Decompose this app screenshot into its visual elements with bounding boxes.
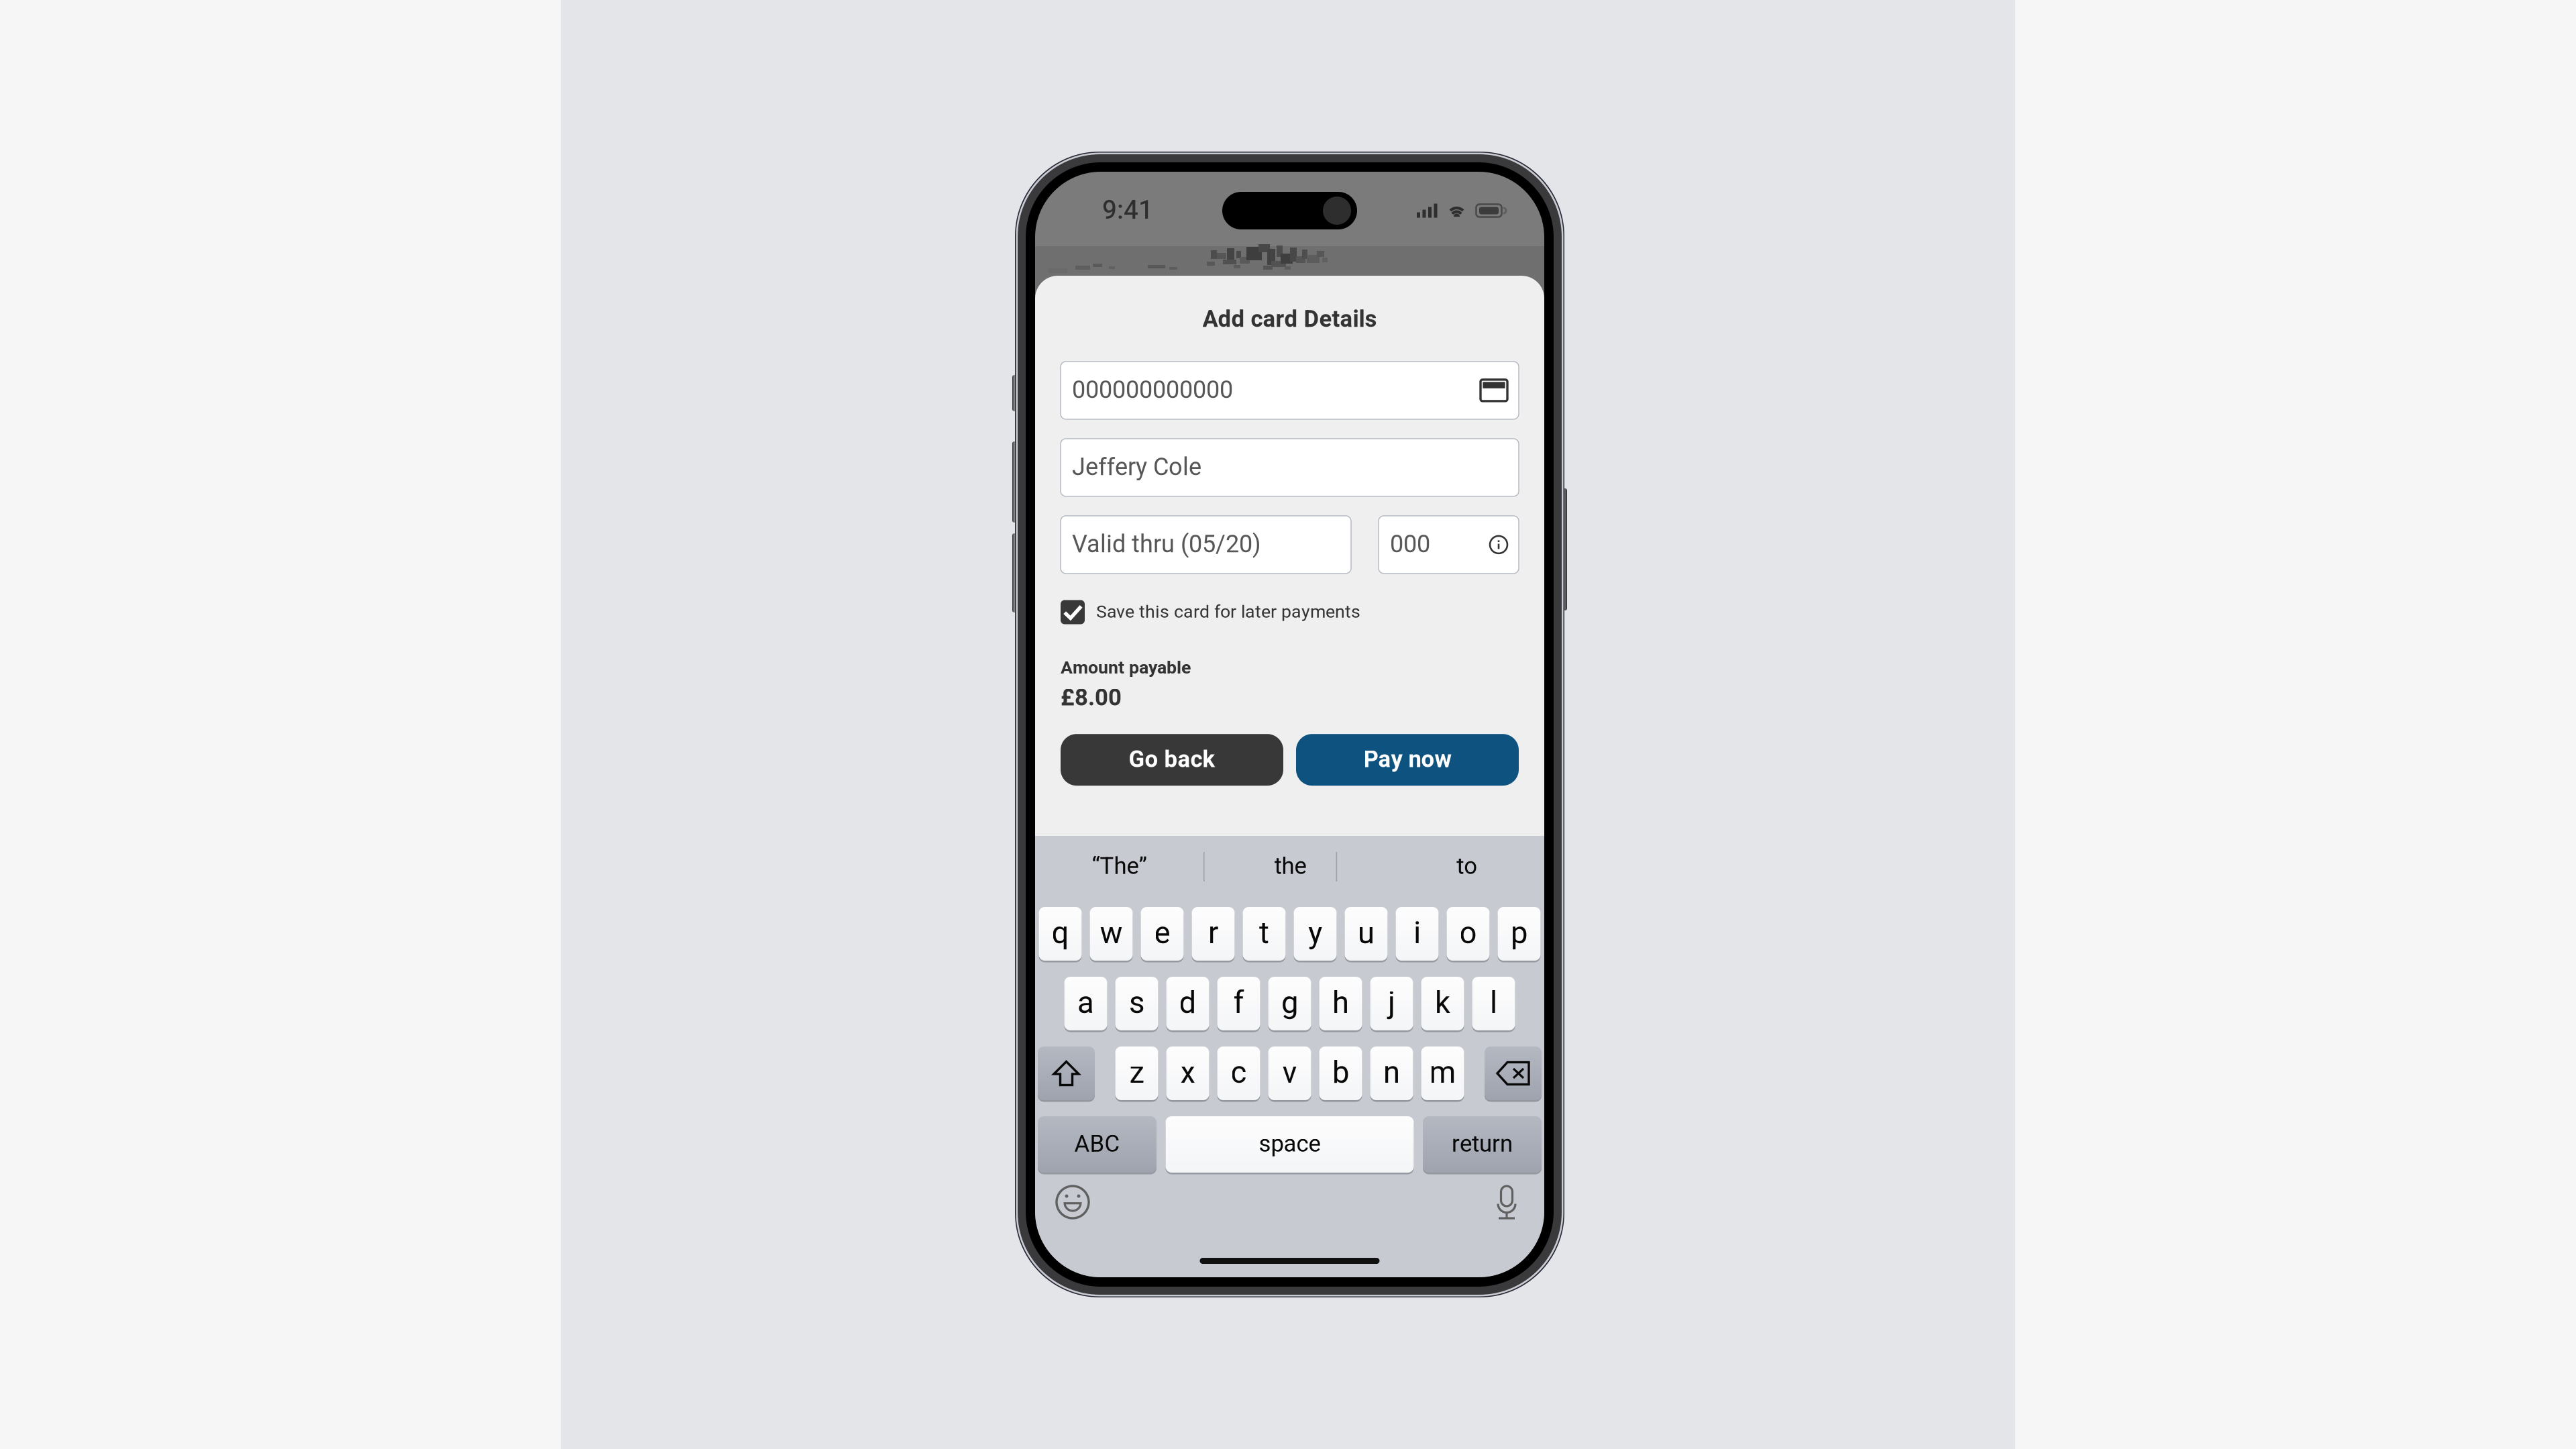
staticText: n (1383, 1051, 1400, 1096)
staticText: x (1180, 1051, 1195, 1096)
staticText: m (1429, 1051, 1456, 1096)
button[interactable]: l (1472, 977, 1515, 1030)
staticText: k (1435, 981, 1450, 1026)
staticText: Amount payable (1061, 655, 1191, 681)
staticText: a (1077, 981, 1094, 1026)
staticText: “The” (1092, 850, 1147, 884)
staticText: f (1233, 981, 1244, 1026)
staticText: o (1459, 911, 1477, 956)
staticText: the (1274, 850, 1307, 884)
button[interactable]: w (1090, 907, 1133, 961)
staticText: d (1179, 981, 1196, 1026)
button[interactable]: t (1243, 907, 1286, 961)
staticText: l (1490, 981, 1497, 1026)
button[interactable]: f (1217, 977, 1260, 1030)
button[interactable]: Delete (1485, 1046, 1542, 1100)
button[interactable]: j (1370, 977, 1413, 1030)
staticText: c (1231, 1051, 1247, 1096)
button[interactable]: Dictation (1487, 1182, 1527, 1222)
button[interactable]: u (1345, 907, 1388, 961)
button[interactable]: d (1166, 977, 1209, 1030)
staticText: Jeffery Cole (1072, 450, 1201, 485)
button[interactable]: s (1115, 977, 1158, 1030)
button[interactable]: b (1319, 1046, 1362, 1100)
staticText: £8.00 (1061, 681, 1122, 715)
staticText: h (1332, 981, 1349, 1026)
button[interactable]: k (1421, 977, 1464, 1030)
staticText: Pay now (1363, 743, 1451, 777)
staticText: q (1052, 911, 1069, 956)
staticText: return (1452, 1127, 1513, 1161)
staticText: i (1413, 911, 1421, 956)
staticText: u (1358, 911, 1375, 956)
button[interactable]: o (1447, 907, 1490, 961)
button[interactable]: “The” (1035, 836, 1203, 898)
button[interactable]: r (1192, 907, 1235, 961)
button[interactable]: q (1039, 907, 1082, 961)
staticText: p (1511, 911, 1527, 956)
staticText: r (1208, 911, 1218, 956)
staticText: y (1308, 911, 1322, 956)
staticText: to (1457, 850, 1477, 884)
button[interactable]: c (1217, 1046, 1260, 1100)
button[interactable]: i (1396, 907, 1439, 961)
staticText: j (1388, 981, 1395, 1026)
staticText: 9:41 (1102, 192, 1153, 230)
button[interactable]: the (1205, 836, 1336, 898)
button[interactable]: x (1166, 1046, 1209, 1100)
button[interactable]: z (1115, 1046, 1158, 1100)
staticText: e (1154, 911, 1170, 956)
button[interactable]: Emoji keyboard (1053, 1182, 1093, 1222)
staticText: Go back (1129, 743, 1215, 777)
staticText: v (1282, 1051, 1297, 1096)
button[interactable]: to (1337, 836, 1544, 898)
button[interactable]: Pay now (1296, 734, 1519, 786)
button[interactable]: g (1268, 977, 1311, 1030)
button[interactable]: return (1423, 1116, 1542, 1173)
button[interactable]: Go back (1061, 734, 1283, 786)
staticText: 000 (1390, 527, 1430, 562)
staticText: g (1281, 981, 1298, 1026)
staticText: b (1332, 1051, 1349, 1096)
staticText: 000000000000 (1072, 373, 1233, 408)
button[interactable]: v (1268, 1046, 1311, 1100)
staticText: s (1129, 981, 1144, 1026)
button[interactable]: Save this card for later payments (1035, 573, 1544, 625)
button[interactable]: m (1421, 1046, 1464, 1100)
staticText: ABC (1074, 1127, 1120, 1161)
staticText: t (1259, 911, 1269, 956)
button[interactable]: ABC (1038, 1116, 1157, 1173)
button[interactable]: p (1498, 907, 1541, 961)
staticText: Save this card for later payments (1096, 599, 1360, 625)
button[interactable]: y (1294, 907, 1337, 961)
staticText: Valid thru (05/20) (1072, 527, 1261, 562)
staticText: w (1100, 911, 1123, 956)
staticText: Add card Details (1202, 303, 1377, 337)
button[interactable]: Shift (1038, 1046, 1095, 1100)
staticText: space (1259, 1127, 1321, 1161)
button[interactable]: space (1166, 1116, 1414, 1173)
staticText: z (1129, 1051, 1144, 1096)
button[interactable]: h (1319, 977, 1362, 1030)
button[interactable]: a (1064, 977, 1107, 1030)
button[interactable]: e (1141, 907, 1184, 961)
button[interactable]: n (1370, 1046, 1413, 1100)
